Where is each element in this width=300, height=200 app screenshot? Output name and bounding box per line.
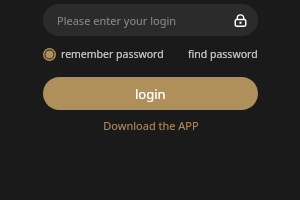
button[interactable]: Toggle password visibility: [230, 10, 250, 30]
button[interactable]: remember password: [43, 47, 164, 61]
staticText: login: [135, 85, 166, 103]
button[interactable]: Please enter your login password: [43, 4, 258, 36]
staticText: remember password: [61, 47, 164, 61]
button[interactable]: find password: [188, 47, 258, 61]
staticText: find password: [188, 47, 258, 61]
button[interactable]: Download the APP: [43, 118, 258, 133]
button[interactable]: login: [43, 77, 258, 110]
staticText: Please enter your login password: [57, 13, 226, 28]
staticText: Download the APP: [103, 118, 199, 133]
